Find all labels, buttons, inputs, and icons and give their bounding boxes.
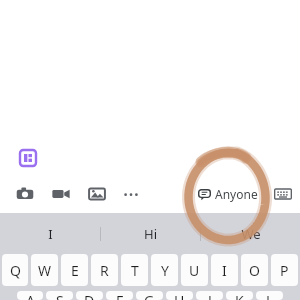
button[interactable]: Camera	[13, 182, 37, 206]
button[interactable]: W	[31, 254, 58, 286]
button[interactable]: K	[226, 291, 253, 300]
button[interactable]: L	[256, 291, 283, 300]
button[interactable]: Anyone	[196, 184, 260, 204]
staticText: K	[235, 291, 244, 300]
staticText: Hi	[144, 225, 157, 243]
button[interactable]: Apps	[18, 148, 38, 168]
button[interactable]: P	[271, 254, 298, 286]
button[interactable]: F	[106, 291, 133, 300]
staticText: P	[280, 261, 289, 280]
button[interactable]: More options	[119, 182, 143, 206]
button[interactable]: O	[241, 254, 268, 286]
button[interactable]: D	[76, 291, 103, 300]
button[interactable]: Gallery	[85, 182, 109, 206]
staticText: L	[266, 291, 274, 300]
button[interactable]: E	[61, 254, 88, 286]
button[interactable]: Hi	[101, 213, 200, 254]
staticText: Anyone	[215, 186, 258, 202]
staticText: I	[222, 261, 227, 280]
button[interactable]: A	[17, 291, 43, 300]
button[interactable]: S	[46, 291, 73, 300]
staticText: S	[56, 291, 64, 300]
staticText: T	[131, 261, 139, 280]
button[interactable]: G	[136, 291, 163, 300]
staticText: H	[174, 291, 185, 300]
button[interactable]: R	[91, 254, 118, 286]
staticText: Q	[10, 261, 21, 280]
staticText: W	[38, 261, 52, 280]
staticText: Y	[161, 261, 169, 280]
staticText: U	[189, 261, 200, 280]
staticText: We	[241, 225, 261, 243]
staticText: I	[48, 225, 53, 243]
staticText: J	[208, 291, 212, 300]
staticText: A	[26, 291, 35, 300]
button[interactable]: J	[196, 291, 223, 300]
staticText: G	[144, 291, 155, 300]
button[interactable]: Video	[49, 182, 73, 206]
staticText: E	[71, 261, 79, 280]
staticText: D	[84, 291, 95, 300]
button[interactable]: U	[181, 254, 208, 286]
button[interactable]: Q	[2, 254, 28, 286]
button[interactable]: We	[201, 213, 300, 254]
button[interactable]: Keyboard	[272, 183, 294, 205]
staticText: O	[249, 261, 260, 280]
button[interactable]: H	[166, 291, 193, 300]
staticText: F	[116, 291, 124, 300]
button[interactable]: T	[121, 254, 148, 286]
button[interactable]: Y	[151, 254, 178, 286]
button[interactable]: I	[0, 213, 100, 254]
staticText: R	[100, 261, 109, 280]
button[interactable]: I	[211, 254, 238, 286]
